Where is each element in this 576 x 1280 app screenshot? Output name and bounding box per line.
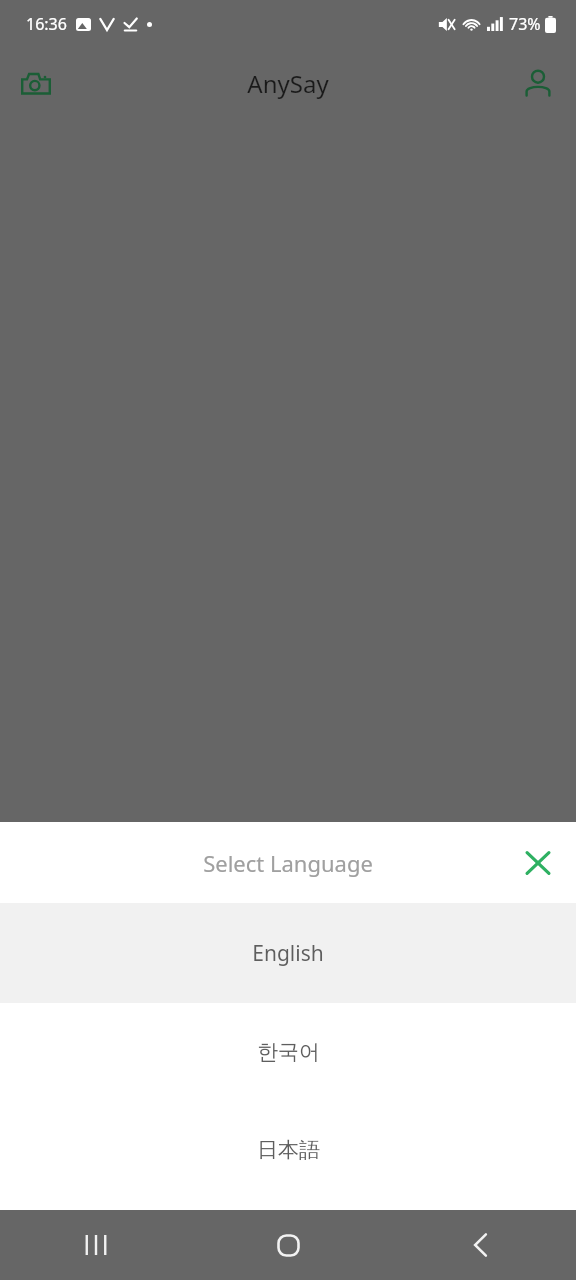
- button[interactable]: 한국어: [0, 1003, 576, 1101]
- button[interactable]: Profile: [514, 59, 562, 107]
- staticText: 73%: [509, 13, 541, 35]
- button[interactable]: English: [0, 903, 576, 1003]
- staticText: AnySay: [247, 67, 329, 100]
- button[interactable]: 日本語: [0, 1101, 576, 1199]
- button[interactable]: Home: [192, 1210, 384, 1280]
- staticText: English: [252, 939, 324, 968]
- button[interactable]: Back: [384, 1210, 576, 1280]
- staticText: 16:36: [26, 13, 67, 35]
- button[interactable]: Recent apps: [0, 1210, 192, 1280]
- button[interactable]: Camera: [12, 59, 60, 107]
- staticText: Select Language: [203, 848, 373, 878]
- button[interactable]: Close: [512, 837, 564, 889]
- staticText: 한국어: [257, 1039, 320, 1065]
- staticText: 日本語: [257, 1137, 320, 1163]
